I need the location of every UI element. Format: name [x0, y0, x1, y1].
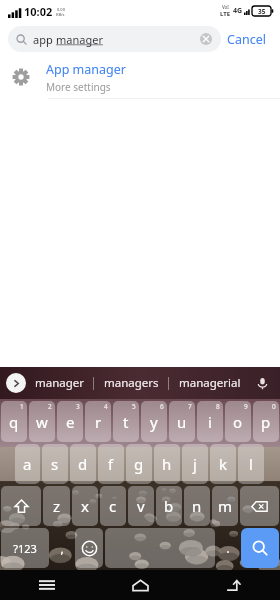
staticText: LTE — [220, 10, 231, 18]
staticText: c — [109, 496, 117, 516]
staticText: 4G — [233, 6, 243, 16]
button[interactable]: managerial — [169, 367, 250, 399]
staticText: 5 — [132, 402, 136, 411]
staticText: 8 — [216, 402, 220, 411]
button[interactable]: j — [182, 444, 208, 484]
button[interactable]: u — [169, 401, 195, 442]
staticText: t — [123, 412, 129, 432]
staticText: l — [249, 454, 253, 474]
staticText: 35 — [258, 7, 266, 16]
staticText: 0 — [272, 402, 276, 411]
staticText: x — [81, 496, 89, 516]
button[interactable]: s — [42, 444, 68, 484]
staticText: f — [108, 454, 114, 474]
button[interactable]: . — [217, 528, 239, 568]
staticText: 1 — [20, 402, 24, 411]
button[interactable]: y — [141, 401, 167, 442]
staticText: q — [9, 412, 19, 432]
staticText: d — [78, 454, 88, 474]
button[interactable]: d — [70, 444, 96, 484]
button[interactable] — [105, 528, 215, 568]
button[interactable]: Cancel — [221, 27, 272, 52]
staticText: h — [162, 454, 172, 474]
button[interactable]: n — [184, 486, 210, 526]
button[interactable]: x — [72, 486, 98, 526]
staticText: p — [261, 412, 271, 432]
staticText: y — [150, 412, 158, 432]
staticText: w — [36, 412, 48, 432]
staticText: More settings — [46, 80, 111, 94]
button[interactable]: e — [57, 401, 83, 442]
staticText: manager — [56, 32, 103, 47]
staticText: Cancel — [227, 31, 266, 48]
staticText: ?123 — [13, 541, 37, 556]
button[interactable]: c — [100, 486, 126, 526]
staticText: k — [219, 454, 228, 474]
button[interactable]: f — [98, 444, 124, 484]
staticText: e — [66, 412, 75, 432]
staticText: app — [33, 32, 56, 47]
button[interactable]: App manager — [0, 56, 280, 98]
staticText: App manager — [46, 61, 126, 78]
button[interactable]: h — [154, 444, 180, 484]
button[interactable]: v — [128, 486, 154, 526]
staticText: j — [193, 454, 197, 474]
staticText: r — [95, 412, 102, 432]
staticText: managers — [104, 375, 159, 391]
button[interactable]: z — [43, 486, 70, 526]
staticText: u — [177, 412, 187, 432]
staticText: 6 — [160, 402, 164, 411]
button[interactable]: Voice input — [250, 367, 274, 399]
button[interactable]: ?123 — [1, 528, 49, 568]
button[interactable]: w — [29, 401, 55, 442]
button[interactable]: Recents — [0, 570, 94, 600]
staticText: 10:02 — [24, 4, 53, 19]
button[interactable]: manager — [26, 367, 93, 399]
staticText: 0.00 — [57, 7, 65, 12]
staticText: VoI — [222, 4, 229, 10]
button[interactable]: b — [156, 486, 182, 526]
staticText: 4 — [104, 402, 108, 411]
button[interactable]: Emoji — [75, 528, 103, 568]
button[interactable]: Backspace — [240, 486, 279, 526]
button[interactable]: managers — [94, 367, 168, 399]
staticText: KB/s — [56, 12, 65, 17]
button[interactable]: r — [85, 401, 111, 442]
button[interactable]: app — [8, 26, 221, 52]
button[interactable]: q — [1, 401, 27, 442]
button[interactable]: k — [210, 444, 236, 484]
staticText: m — [218, 496, 233, 516]
staticText: i — [208, 412, 212, 432]
staticText: s — [51, 454, 59, 474]
button[interactable]: Search — [241, 528, 279, 568]
button[interactable]: m — [212, 486, 238, 526]
staticText: 3 — [76, 402, 80, 411]
staticText: manager — [35, 375, 85, 391]
staticText: n — [192, 496, 202, 516]
button[interactable]: Clear — [199, 32, 213, 46]
staticText: a — [23, 454, 32, 474]
button[interactable]: Shift — [1, 486, 41, 526]
button[interactable]: , — [51, 528, 73, 568]
button[interactable]: o — [225, 401, 251, 442]
staticText: z — [53, 496, 61, 516]
staticText: , — [60, 540, 64, 556]
button[interactable]: Home — [94, 570, 187, 600]
button[interactable]: p — [253, 401, 279, 442]
staticText: 7 — [188, 402, 192, 411]
staticText: b — [164, 496, 174, 516]
button[interactable]: i — [197, 401, 223, 442]
staticText: managerial — [179, 375, 241, 391]
staticText: v — [137, 496, 145, 516]
button[interactable]: l — [238, 444, 264, 484]
staticText: . — [226, 540, 230, 556]
button[interactable]: g — [126, 444, 152, 484]
button[interactable]: Back — [187, 570, 280, 600]
staticText: 9 — [244, 402, 248, 411]
staticText: 2 — [48, 402, 52, 411]
button[interactable]: a — [15, 444, 40, 484]
staticText: g — [134, 454, 144, 474]
button[interactable]: t — [113, 401, 139, 442]
button[interactable]: Expand suggestions — [6, 373, 26, 393]
staticText: o — [233, 412, 243, 432]
